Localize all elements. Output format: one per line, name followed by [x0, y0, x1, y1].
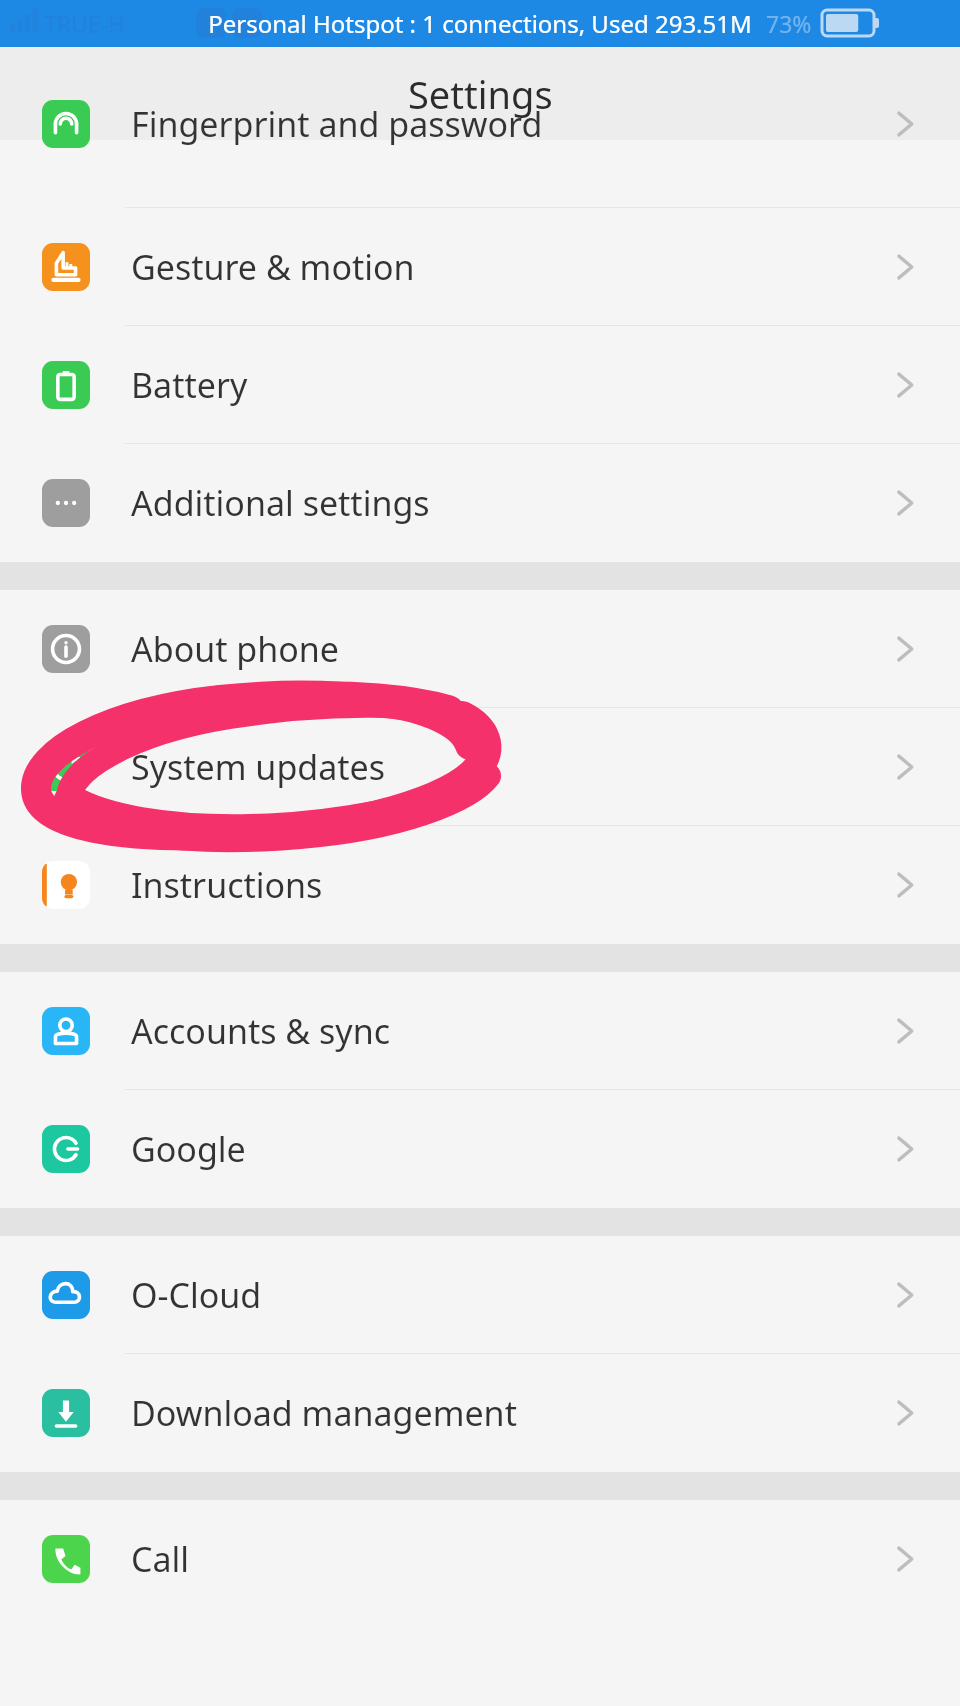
button[interactable]: Google	[0, 1090, 960, 1208]
staticText: Settings	[408, 68, 553, 120]
staticText: Gesture & motion	[131, 244, 415, 290]
staticText: Additional settings	[131, 480, 430, 526]
button[interactable]: Accounts & sync	[0, 972, 960, 1090]
staticText: TRUE-H	[44, 8, 126, 39]
staticText: About phone	[131, 626, 340, 672]
button[interactable]: Battery	[0, 326, 960, 444]
staticText: Instructions	[131, 862, 323, 908]
staticText: Download management	[131, 1390, 517, 1436]
button[interactable]: Fingerprint and password	[0, 140, 960, 208]
staticText: Call	[131, 1536, 190, 1582]
button[interactable]: O-Cloud	[0, 1236, 960, 1354]
staticText: Fingerprint and password	[131, 101, 543, 147]
button[interactable]: About phone	[0, 590, 960, 708]
staticText: Accounts & sync	[131, 1008, 391, 1054]
staticText: Google	[131, 1126, 246, 1172]
staticText: 73%	[766, 8, 812, 39]
button[interactable]: System updates	[0, 708, 960, 826]
staticText: System updates	[131, 744, 386, 790]
button[interactable]: Additional settings	[0, 444, 960, 562]
staticText: Personal Hotspot : 1 connections, Used 2…	[208, 7, 752, 40]
staticText: Battery	[131, 362, 248, 408]
button[interactable]: Gesture & motion	[0, 208, 960, 326]
button[interactable]: Instructions	[0, 826, 960, 944]
button[interactable]: Call	[0, 1500, 960, 1618]
staticText: O-Cloud	[131, 1272, 262, 1318]
button[interactable]: Download management	[0, 1354, 960, 1472]
